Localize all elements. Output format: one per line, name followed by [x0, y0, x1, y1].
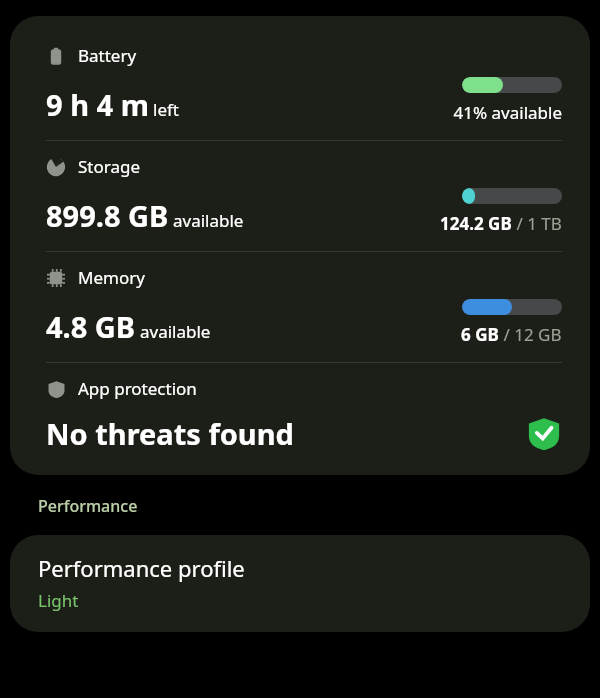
staticText: No threats found: [46, 414, 294, 453]
staticText: available: [173, 209, 244, 232]
staticText: 6 GB: [461, 323, 499, 346]
other: No threats found: [526, 416, 562, 452]
staticText: 4.8 GB: [46, 307, 136, 346]
button[interactable]: Performance profile: [10, 535, 590, 632]
other: Memory: [46, 268, 66, 288]
staticText: 899.8 GB: [46, 196, 169, 235]
other: Storage: [46, 157, 66, 177]
staticText: Memory: [78, 266, 145, 289]
other: Battery: [46, 46, 66, 66]
staticText: / 1 TB: [512, 212, 562, 235]
staticText: Battery: [78, 44, 137, 67]
button[interactable]: Memory: [10, 252, 590, 362]
staticText: 41% available: [453, 101, 562, 124]
button[interactable]: Battery: [10, 30, 590, 140]
staticText: Light: [38, 589, 79, 612]
staticText: / 12 GB: [499, 323, 562, 346]
button[interactable]: App protection: [10, 363, 590, 469]
other: App protection: [47, 380, 66, 399]
staticText: 9 h 4 m: [46, 85, 149, 124]
staticText: App protection: [78, 377, 197, 400]
staticText: available: [140, 320, 211, 343]
staticText: Performance profile: [38, 553, 245, 583]
staticText: left: [153, 98, 179, 121]
staticText: 124.2 GB: [440, 212, 512, 235]
staticText: Performance: [38, 495, 138, 517]
button[interactable]: Storage: [10, 141, 590, 251]
staticText: Storage: [78, 155, 141, 178]
